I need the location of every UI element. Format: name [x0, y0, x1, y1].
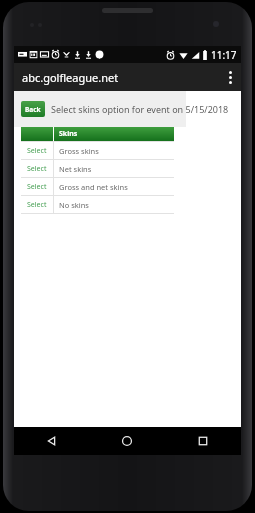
button[interactable]: abc.golfleague.net — [22, 70, 119, 85]
staticText: Net skins — [59, 164, 92, 174]
staticText: Select — [27, 164, 47, 174]
button[interactable]: More options — [219, 63, 241, 91]
button[interactable]: Select — [21, 160, 174, 177]
staticText: Select — [27, 200, 47, 210]
staticText: 11:17 — [211, 48, 237, 62]
staticText: abc.golfleague.net — [22, 70, 119, 85]
button[interactable]: Select — [21, 196, 174, 213]
button[interactable]: Recent apps — [165, 427, 241, 455]
button[interactable]: Back — [14, 427, 89, 455]
staticText: Gross and net skins — [59, 182, 128, 192]
button[interactable]: Back — [21, 101, 45, 117]
staticText: Skins — [59, 129, 78, 139]
staticText: Select — [27, 182, 47, 192]
staticText: Back — [25, 105, 41, 114]
staticText: No skins — [59, 200, 89, 210]
staticText: Select — [27, 146, 47, 156]
button[interactable]: Home — [89, 427, 165, 455]
staticText: Gross skins — [59, 146, 99, 156]
button[interactable]: Select — [21, 142, 174, 159]
button[interactable]: Select — [21, 178, 174, 195]
staticText: Select skins option for event on 5/15/20… — [51, 103, 229, 115]
